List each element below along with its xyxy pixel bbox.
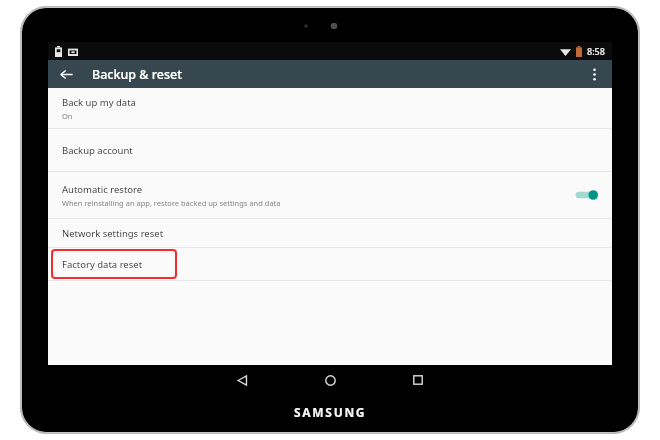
button[interactable]: Back xyxy=(220,365,264,395)
staticText: Factory data reset xyxy=(62,258,143,271)
staticText: 8:58 xyxy=(587,45,605,57)
button[interactable]: Recent apps xyxy=(396,365,440,395)
staticText: SAMSUNG xyxy=(294,404,367,420)
staticText: On xyxy=(62,111,73,121)
staticText: Back up my data xyxy=(62,96,136,109)
button[interactable]: Back up my data xyxy=(48,88,612,128)
staticText: Backup & reset xyxy=(92,66,183,83)
button[interactable]: Automatic restore, on xyxy=(574,187,600,203)
button[interactable]: Backup account xyxy=(48,129,612,171)
button[interactable]: Automatic restore xyxy=(48,172,612,218)
staticText: Automatic restore xyxy=(62,183,143,196)
button[interactable]: Navigate up xyxy=(54,62,78,86)
button[interactable]: More options xyxy=(582,62,606,86)
button[interactable]: Network settings reset xyxy=(48,219,612,247)
button[interactable]: Factory data reset xyxy=(48,248,612,280)
staticText: Network settings reset xyxy=(62,227,164,240)
staticText: When reinstalling an app, restore backed… xyxy=(62,198,281,208)
button[interactable]: Home xyxy=(308,365,352,395)
staticText: Backup account xyxy=(62,144,133,157)
